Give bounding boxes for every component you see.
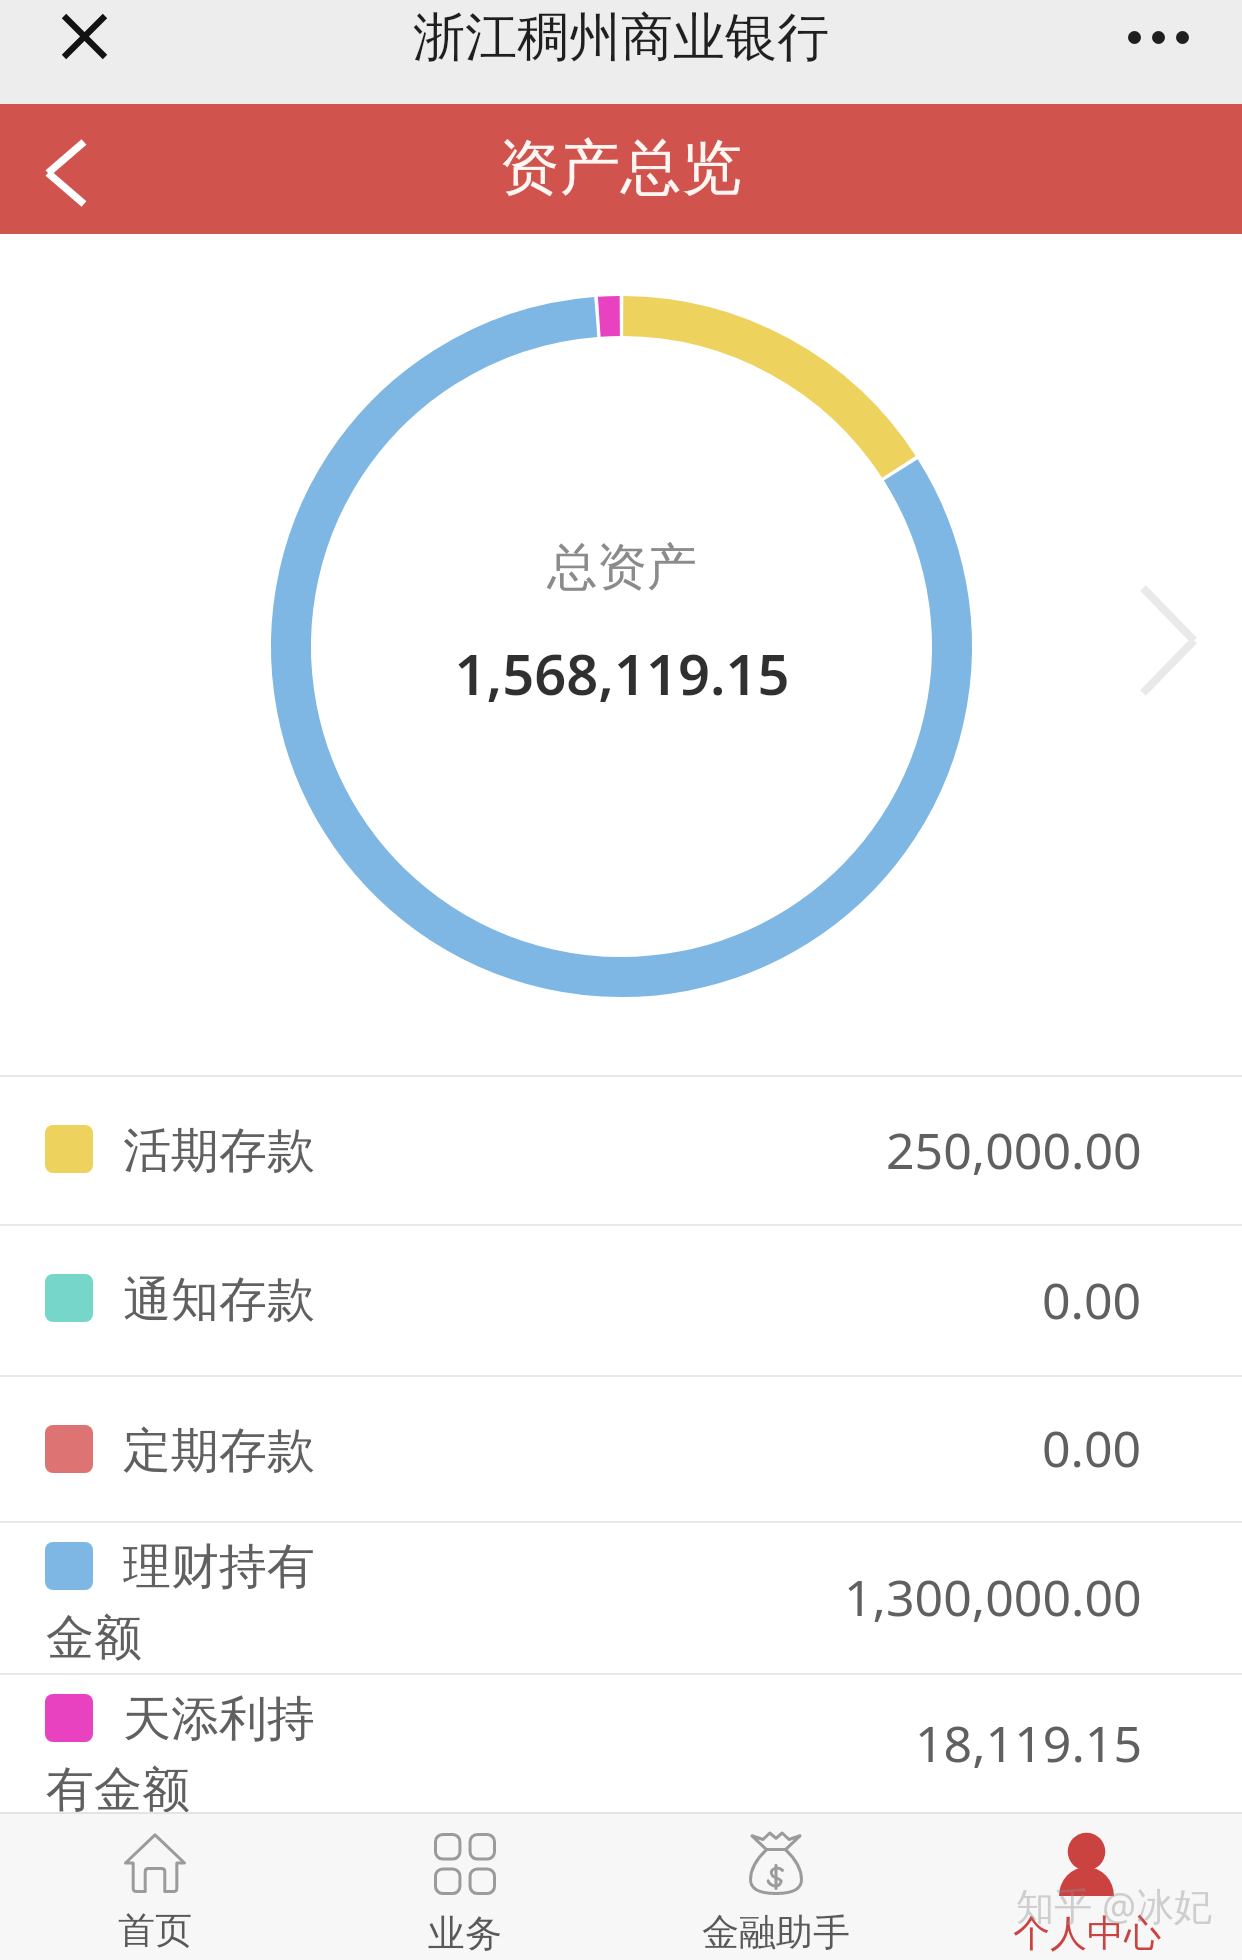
staticText: 通知存款 (123, 1270, 315, 1330)
button[interactable]: 活期存款 (0, 1075, 1242, 1224)
staticText: 首页 (118, 1907, 192, 1954)
staticText: 总资产 (1, 536, 1242, 599)
staticText: 0.00 (1042, 1266, 1142, 1334)
button[interactable]: Close (42, 0, 126, 78)
staticText: 个人中心 (1013, 1910, 1161, 1957)
button[interactable]: 天添利持 (0, 1673, 1242, 1812)
staticText: 18,119.15 (915, 1709, 1142, 1777)
button[interactable]: 通知存款 (0, 1224, 1242, 1375)
staticText: 250,000.00 (886, 1116, 1142, 1184)
button[interactable]: 金融助手 (620, 1812, 931, 1960)
button[interactable]: Next page (1113, 580, 1223, 700)
button[interactable]: 首页 (0, 1812, 310, 1960)
staticText: 知乎 @冰妃 (1016, 1879, 1213, 1931)
staticText: 定期存款 (123, 1421, 315, 1481)
staticText: 天添利持 (123, 1689, 315, 1749)
button[interactable]: 理财持有 (0, 1521, 1242, 1673)
staticText: 浙江稠州商业银行 (413, 5, 829, 71)
staticText: 0.00 (1042, 1414, 1142, 1482)
button[interactable]: 业务 (310, 1812, 620, 1960)
staticText: 资产总览 (0, 130, 1242, 206)
staticText: 金融助手 (702, 1909, 850, 1956)
staticText: 1,300,000.00 (844, 1563, 1142, 1631)
staticText: 理财持有 (123, 1537, 315, 1597)
button[interactable]: 定期存款 (0, 1375, 1242, 1521)
staticText: 1,568,119.15 (1, 635, 1242, 711)
button[interactable]: More options (1110, 0, 1206, 85)
button[interactable]: Back (14, 121, 118, 225)
staticText: 有金额 (46, 1760, 190, 1820)
staticText: 活期存款 (123, 1121, 315, 1181)
button[interactable]: 个人中心 (931, 1812, 1242, 1960)
staticText: 金额 (46, 1608, 142, 1668)
staticText: 业务 (428, 1910, 502, 1957)
